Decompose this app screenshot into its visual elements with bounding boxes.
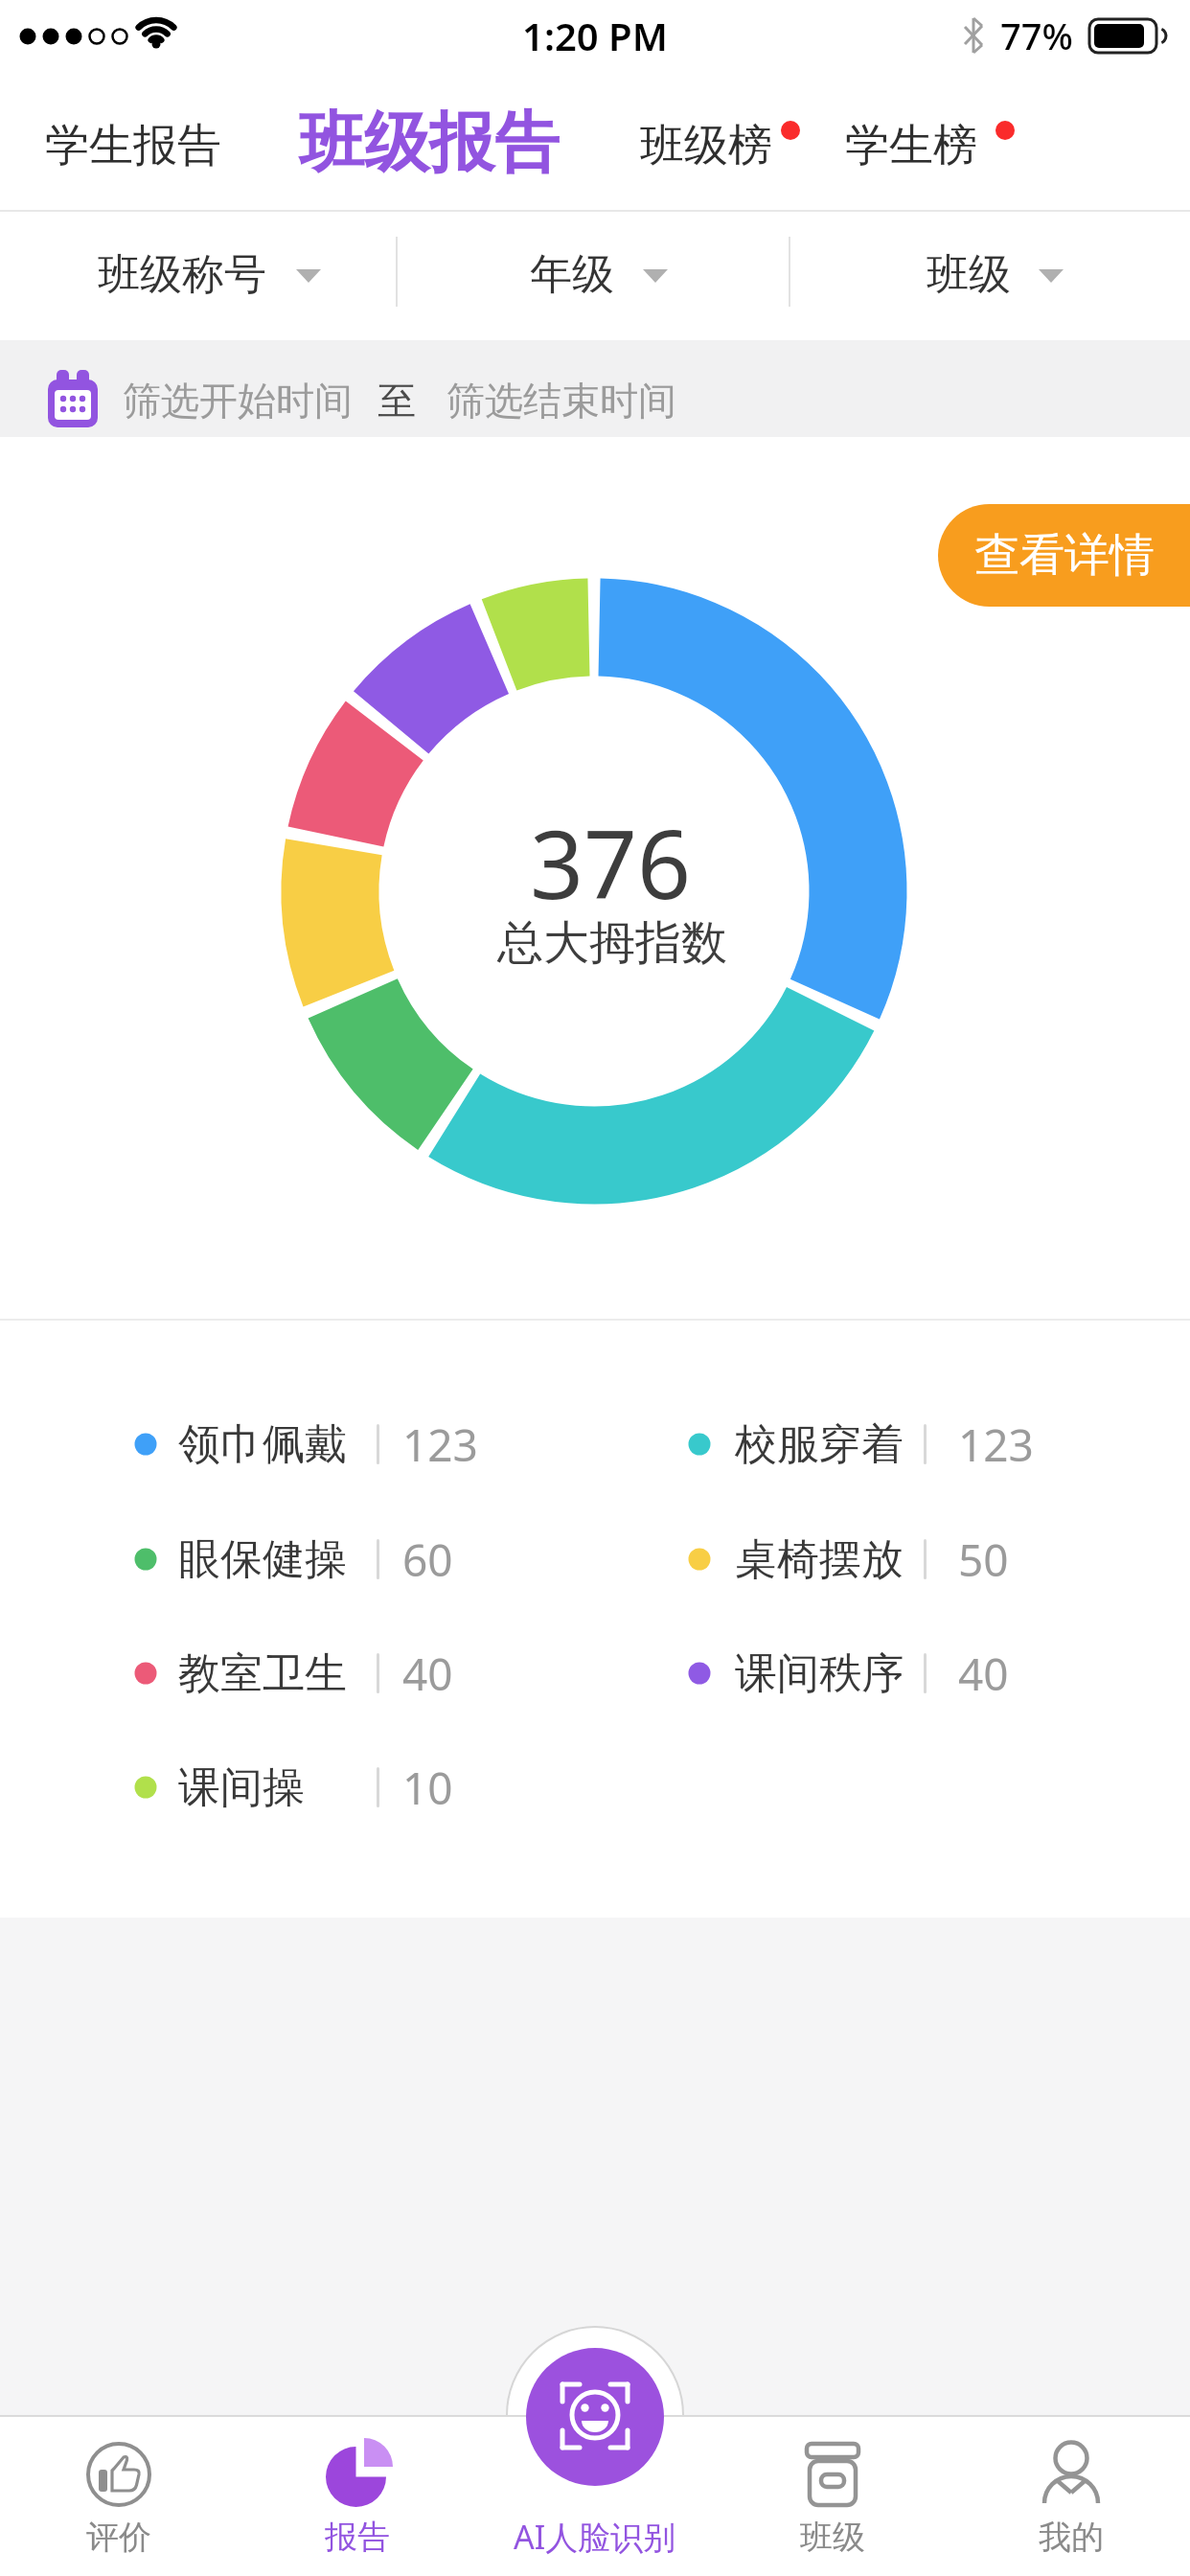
staticText: 班级称号 — [98, 248, 266, 301]
staticText: 123 — [402, 1414, 478, 1475]
staticText: 40 — [958, 1644, 1009, 1704]
staticText: 123 — [958, 1414, 1034, 1475]
staticText: 班级 — [800, 2517, 865, 2558]
staticText: 桌椅摆放 — [735, 1533, 904, 1586]
staticText: 年级 — [530, 248, 614, 301]
button[interactable] — [714, 2415, 951, 2576]
button[interactable] — [0, 340, 1190, 437]
staticText: 1:20 PM — [522, 10, 668, 61]
staticText: 至 — [378, 377, 416, 425]
button[interactable] — [238, 2415, 475, 2576]
button[interactable] — [951, 2415, 1190, 2576]
staticText: 我的 — [1039, 2517, 1104, 2558]
button[interactable] — [0, 2415, 238, 2576]
button[interactable] — [623, 96, 805, 195]
staticText: 10 — [402, 1758, 453, 1818]
staticText: 77% — [1000, 11, 1073, 60]
staticText: 班级 — [927, 248, 1011, 301]
button[interactable]: 查看详情 — [938, 504, 1190, 607]
staticText: 教室卫生 — [178, 1647, 347, 1700]
staticText: 班级报告 — [299, 103, 560, 185]
button[interactable] — [287, 88, 575, 199]
staticText: 学生榜 — [845, 118, 977, 173]
staticText: 查看详情 — [974, 527, 1155, 584]
staticText: 50 — [958, 1529, 1009, 1590]
button[interactable] — [829, 96, 1011, 195]
staticText: AI人脸识别 — [514, 2515, 676, 2559]
staticText: 总大拇指数 — [497, 914, 727, 972]
staticText: 班级榜 — [640, 118, 772, 173]
staticText: 课间操 — [178, 1761, 305, 1814]
button[interactable] — [0, 212, 397, 340]
staticText: 筛选结束时间 — [446, 377, 676, 425]
button[interactable] — [29, 96, 259, 195]
staticText: 学生报告 — [45, 118, 221, 173]
staticText: 60 — [402, 1529, 453, 1590]
button[interactable] — [526, 2348, 664, 2486]
staticText: 领巾佩戴 — [178, 1418, 347, 1471]
staticText: 校服穿着 — [735, 1418, 904, 1471]
staticText: 评价 — [86, 2517, 151, 2558]
staticText: 筛选开始时间 — [123, 377, 353, 425]
staticText: 课间秩序 — [735, 1647, 904, 1700]
staticText: 报告 — [325, 2517, 390, 2558]
staticText: 376 — [530, 798, 692, 913]
button[interactable] — [397, 212, 790, 340]
staticText: 40 — [402, 1644, 453, 1704]
button[interactable] — [790, 212, 1190, 340]
staticText: 眼保健操 — [178, 1533, 347, 1586]
